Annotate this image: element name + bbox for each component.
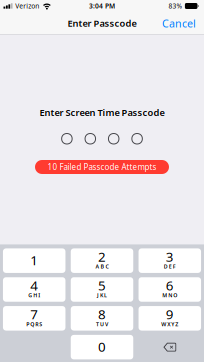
staticText: 83% (168, 2, 182, 10)
button[interactable]: 6 (139, 277, 201, 302)
staticText: Enter Screen Time Passcode (39, 106, 164, 119)
button[interactable]: Cancel (154, 12, 204, 34)
button[interactable]: 4 (3, 277, 65, 302)
button[interactable]: 3 (139, 248, 201, 273)
staticText: 6 (166, 276, 174, 294)
button[interactable]: 5 (71, 277, 133, 302)
button[interactable]: 2 (71, 248, 133, 273)
button[interactable]: 0 (71, 335, 133, 359)
staticText: Cancel (162, 16, 196, 30)
staticText: A B C (95, 263, 108, 270)
staticText: Enter Passcode (67, 17, 136, 29)
staticText: 10 Failed Passcode Attempts (47, 162, 156, 172)
staticText: 8 (98, 305, 106, 323)
staticText: J K L (97, 292, 107, 299)
staticText: P Q R S (26, 321, 42, 328)
staticText: 5 (98, 276, 106, 294)
staticText: W X Y Z (161, 321, 178, 328)
staticText: 2 (98, 248, 106, 265)
staticText: T U V (96, 321, 108, 328)
button[interactable]: 9 (139, 306, 201, 331)
staticText: Verizon (15, 2, 39, 10)
button[interactable]: 8 (71, 306, 133, 331)
staticText: M N O (162, 292, 177, 299)
staticText: 0 (98, 338, 106, 355)
staticText: 1 (30, 251, 38, 269)
staticText: 3:04 PM (89, 2, 115, 10)
button[interactable]: 1 (3, 248, 65, 273)
button[interactable]: 7 (3, 306, 65, 331)
staticText: 9 (166, 305, 174, 323)
staticText: G H I (28, 292, 40, 299)
staticText: 4 (30, 276, 38, 294)
staticText: 7 (30, 305, 38, 323)
staticText: D E F (164, 263, 176, 270)
staticText: 3 (166, 248, 174, 265)
button[interactable]: Delete (139, 335, 201, 359)
